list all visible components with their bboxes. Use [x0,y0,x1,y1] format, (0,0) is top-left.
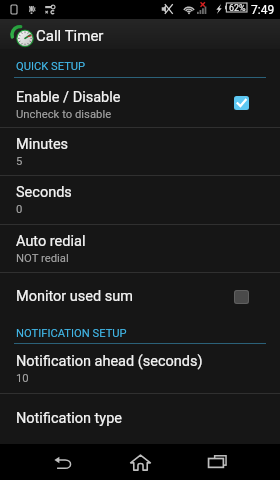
button[interactable]: Back [24,444,100,480]
button[interactable]: Notification type [0,394,280,443]
staticText: Seconds [16,184,72,201]
staticText: 0 [16,203,23,216]
staticText: NOT redial [16,252,69,265]
staticText: Call Timer [36,27,104,45]
button[interactable]: Enabled checkbox [233,93,250,113]
staticText: 10 [16,372,29,385]
staticText: Notification type [16,410,122,427]
staticText: QUICK SETUP [16,60,86,73]
button[interactable]: Home [102,444,178,480]
button[interactable]: Notification ahead (seconds) [0,344,280,393]
button[interactable]: Seconds [0,176,280,224]
button[interactable]: Disabled checkbox [233,287,250,307]
button[interactable]: Recent apps [180,444,256,480]
staticText: Uncheck to disable [16,108,112,121]
button[interactable]: Enable / Disable [0,78,280,127]
staticText: NOTIFICATION SETUP [16,327,127,340]
staticText: Notification ahead (seconds) [16,353,203,370]
button[interactable]: Monitor used sum [0,273,280,320]
staticText: 7:49 [251,3,275,17]
button[interactable]: Auto redial [0,225,280,272]
staticText: Auto redial [16,233,86,250]
staticText: Monitor used sum [16,288,133,305]
button[interactable]: Minutes [0,128,280,175]
staticText: 5 [16,155,23,168]
staticText: 62% [229,3,246,12]
staticText: Minutes [16,136,69,153]
staticText: Enable / Disable [16,89,121,106]
